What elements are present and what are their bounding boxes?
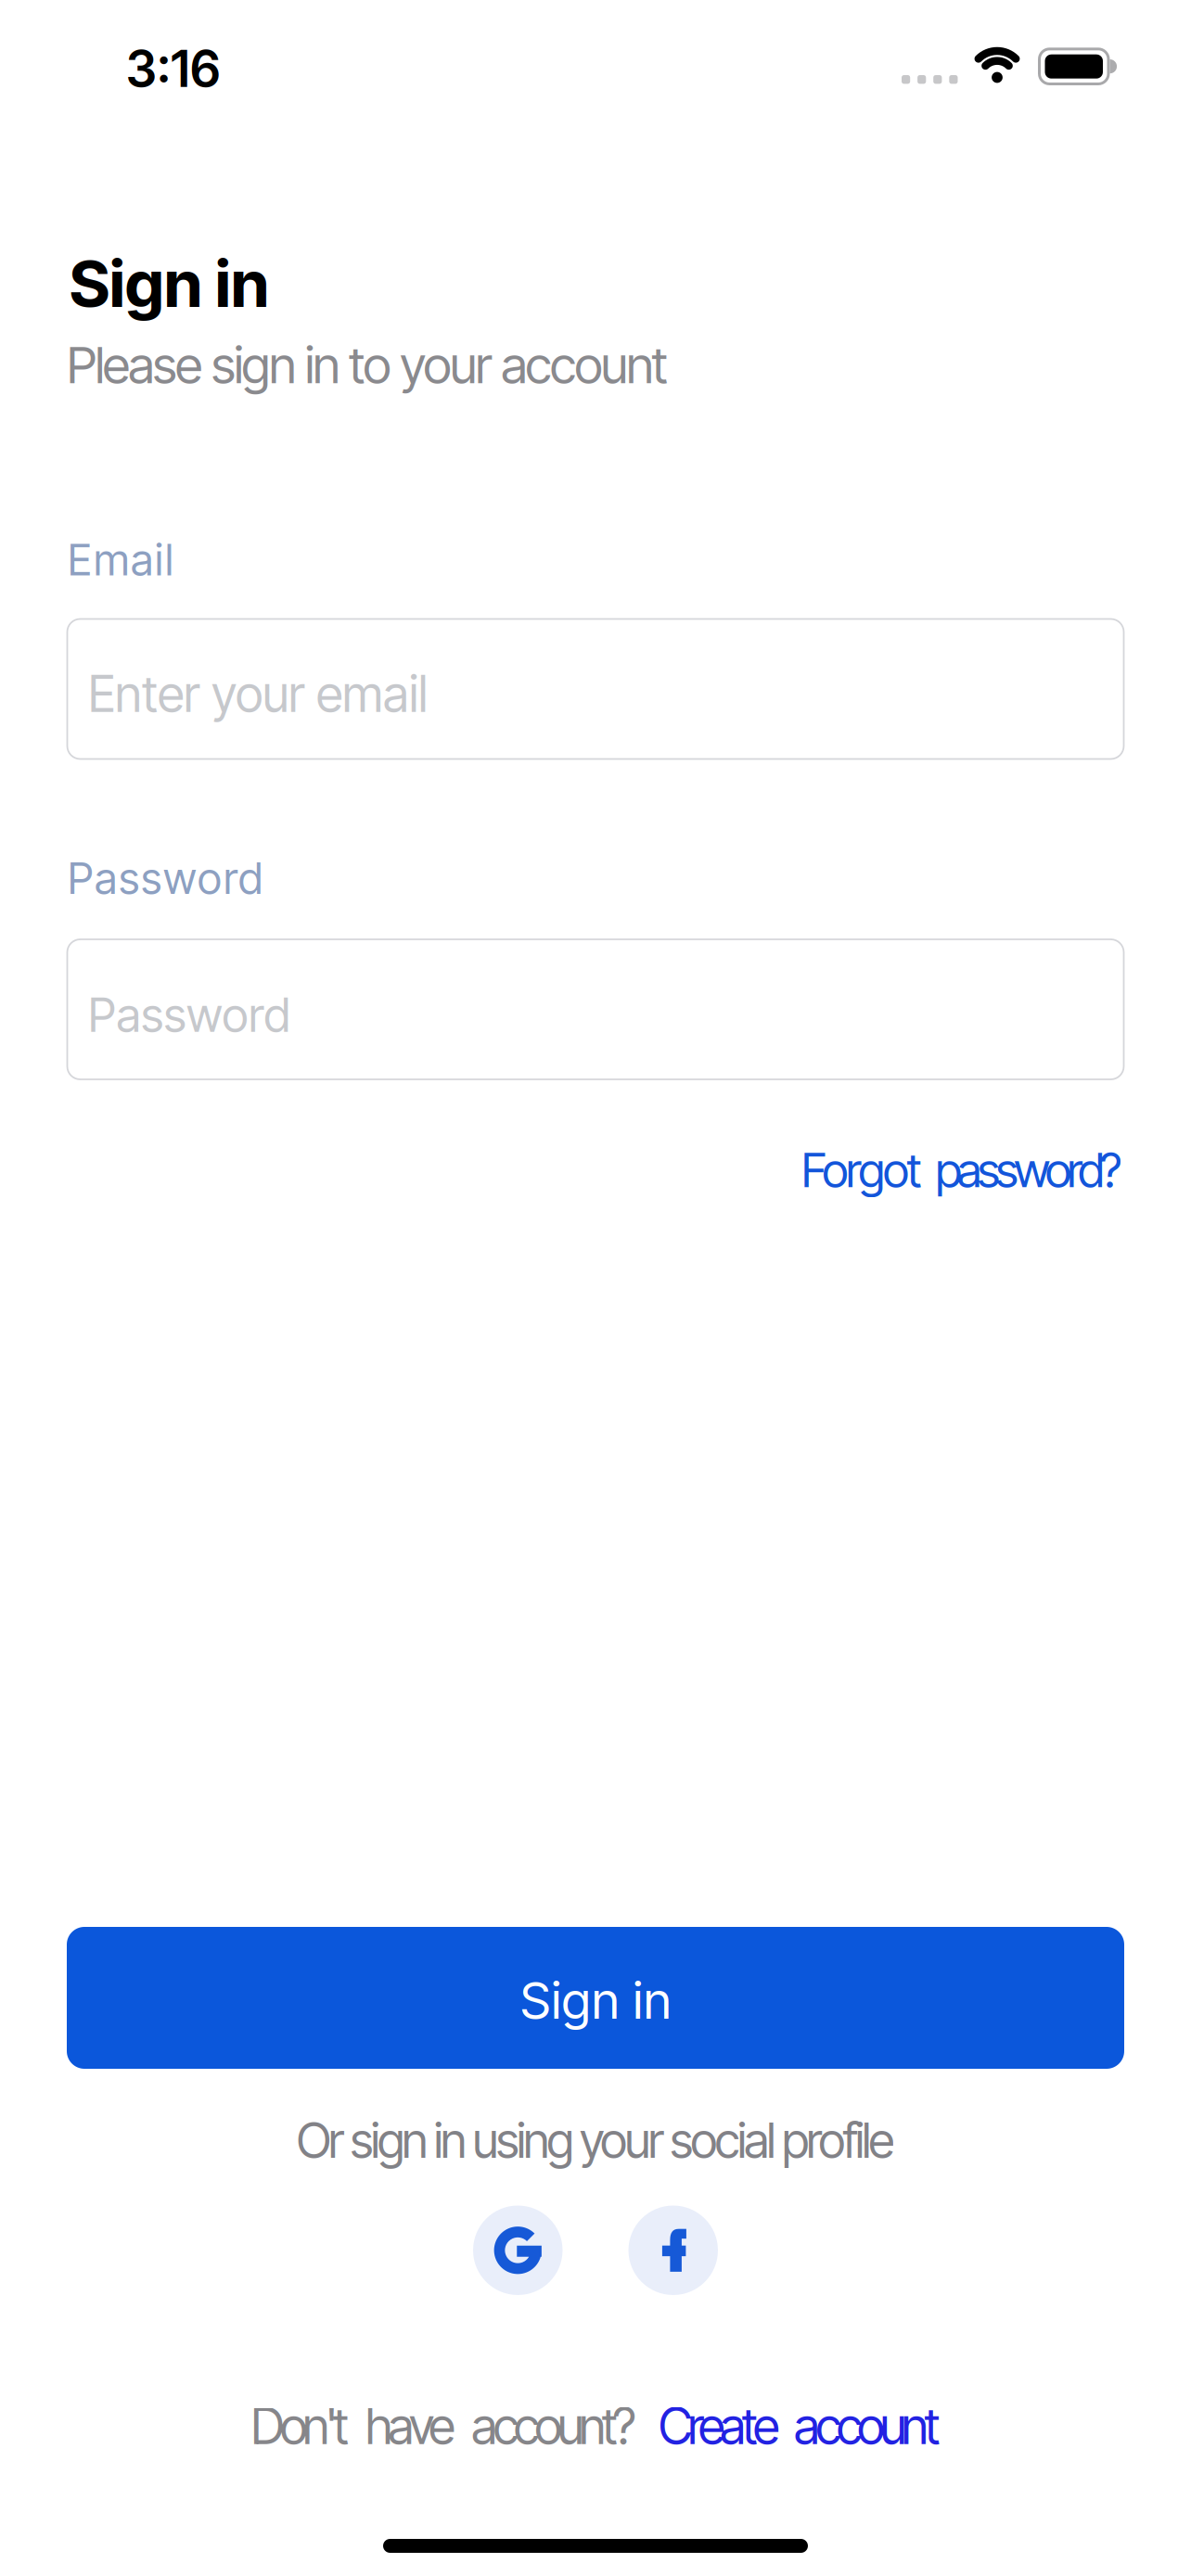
staticText: Don't — [251, 2397, 349, 2455]
staticText: account? — [471, 2397, 636, 2455]
staticText: Please sign in to your account — [67, 335, 667, 395]
button[interactable]: Sign in — [67, 1927, 1124, 2069]
button[interactable]: Forgot — [801, 1142, 1121, 1198]
staticText: Password — [68, 853, 263, 904]
staticText: 3:16 — [126, 40, 221, 98]
staticText: Email — [68, 534, 173, 585]
button[interactable]: Sign in with Facebook — [628, 2206, 718, 2295]
staticText: password? — [935, 1142, 1121, 1198]
staticText: Sign in — [520, 1970, 671, 2030]
staticText: have — [366, 2397, 455, 2455]
staticText: Enter your email — [88, 665, 428, 723]
staticText: Create — [659, 2397, 779, 2455]
staticText: Forgot — [801, 1142, 921, 1198]
staticText: account — [794, 2397, 940, 2455]
button[interactable]: Sign in with Google — [473, 2206, 563, 2295]
staticText: Sign in — [70, 246, 269, 322]
button[interactable]: Create — [659, 2397, 940, 2455]
staticText: Or sign in using your social profile — [296, 2112, 895, 2169]
staticText: Password — [88, 987, 290, 1043]
